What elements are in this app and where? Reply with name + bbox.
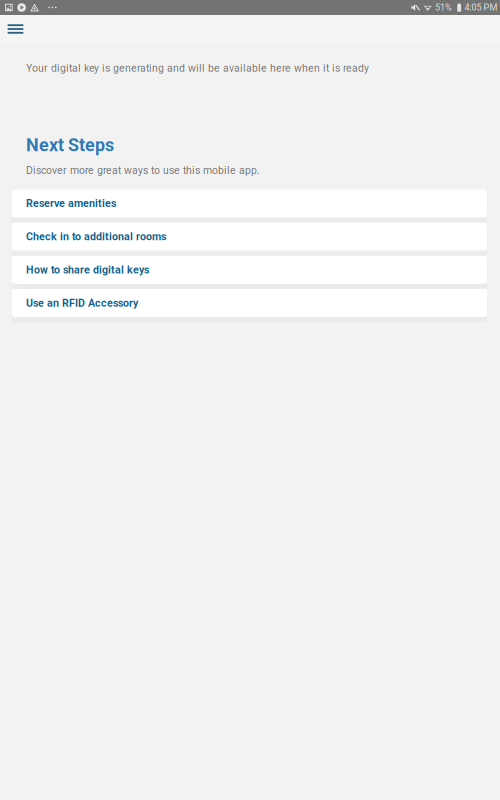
button[interactable]: Use an RFID Accessory: [12, 289, 487, 322]
button[interactable]: Check in to additional rooms: [12, 223, 487, 256]
staticText: How to share digital keys: [26, 264, 149, 276]
staticText: Your digital key is generating and will …: [26, 62, 369, 74]
staticText: Check in to additional rooms: [26, 230, 166, 243]
staticText: Use an RFID Accessory: [26, 297, 138, 309]
button[interactable]: How to share digital keys: [12, 256, 487, 289]
staticText: Reserve amenities: [26, 197, 116, 210]
staticText: Next Steps: [26, 135, 114, 156]
button[interactable]: Menu: [0, 14, 31, 42]
staticText: 51%: [435, 2, 452, 13]
staticText: 4:05 PM: [464, 2, 497, 13]
staticText: Discover more great ways to use this mob…: [26, 164, 260, 176]
button[interactable]: Reserve amenities: [12, 189, 487, 223]
